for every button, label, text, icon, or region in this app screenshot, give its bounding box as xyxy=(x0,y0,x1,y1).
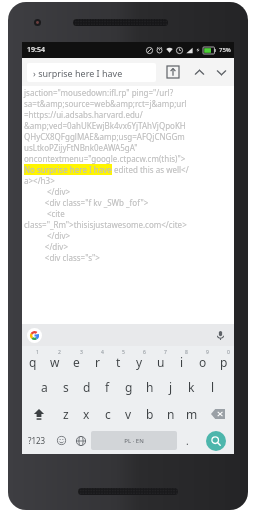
staticText: g xyxy=(125,379,133,395)
staticText: e xyxy=(73,354,80,370)
staticText: j xyxy=(169,379,173,395)
staticText: 8 xyxy=(185,349,188,356)
button[interactable]: v xyxy=(118,400,139,427)
button[interactable]: 3 xyxy=(66,346,87,373)
staticText: 4 xyxy=(101,349,104,356)
staticText: . xyxy=(186,434,189,448)
staticText: m xyxy=(186,406,198,422)
staticText: 9 xyxy=(206,349,209,356)
button[interactable]: Search xyxy=(206,431,226,451)
staticText: a></h3> xyxy=(24,175,55,186)
button[interactable]: Next match xyxy=(210,61,232,83)
button[interactable]: Voice input xyxy=(212,327,228,343)
button[interactable]: s xyxy=(55,373,76,400)
button[interactable]: 8 xyxy=(171,346,192,373)
button[interactable]: Space xyxy=(91,431,177,450)
staticText: 0 xyxy=(227,349,230,356)
button[interactable]: 2 xyxy=(44,346,66,373)
button[interactable]: . xyxy=(177,427,197,454)
button[interactable]: l xyxy=(202,373,223,400)
staticText: l xyxy=(211,379,215,395)
button[interactable]: g xyxy=(118,373,139,400)
staticText: h xyxy=(146,379,154,395)
button[interactable]: 7 xyxy=(150,346,171,373)
staticText: sa=t&amp;source=web&amp;rct=j&amp;url xyxy=(24,98,187,109)
staticText: <cite xyxy=(24,208,65,219)
staticText: w xyxy=(50,354,60,370)
staticText: 19:54 xyxy=(27,45,45,55)
staticText: jsaction="mousedown:ifl.rp" ping="/url? xyxy=(24,87,174,98)
staticText: 5 xyxy=(122,349,125,356)
staticText: p xyxy=(220,354,228,370)
staticText: <div class="f kv _SWb _fof"> xyxy=(24,197,149,208)
staticText: › surprise here I have xyxy=(33,67,123,79)
staticText: r xyxy=(95,354,100,370)
button[interactable]: Previous match xyxy=(188,61,210,83)
button[interactable]: Backspace xyxy=(202,400,234,427)
button[interactable]: Change language xyxy=(71,427,91,454)
staticText: n xyxy=(167,406,175,422)
staticText: x xyxy=(83,406,90,422)
button[interactable]: 1 xyxy=(22,346,44,373)
staticText: 6 xyxy=(143,349,146,356)
staticText: k xyxy=(188,379,195,395)
staticText: 1 xyxy=(36,349,39,356)
staticText: c xyxy=(105,406,111,422)
button[interactable]: x xyxy=(76,400,97,427)
button[interactable]: c xyxy=(97,400,118,427)
button[interactable]: Google search xyxy=(27,328,42,343)
staticText: t xyxy=(116,354,121,370)
staticText: 3 xyxy=(80,349,83,356)
button[interactable]: ?123 xyxy=(22,427,51,454)
staticText: =https://ui.adsabs.harvard.edu/ xyxy=(24,109,143,120)
staticText: s xyxy=(63,379,69,395)
staticText: v xyxy=(125,406,132,422)
button[interactable]: Open in browser xyxy=(162,61,184,83)
staticText: </div> xyxy=(24,230,71,241)
button[interactable]: z xyxy=(55,400,76,427)
button[interactable]: Emoji xyxy=(51,427,71,454)
button[interactable]: k xyxy=(181,373,202,400)
button[interactable]: m xyxy=(181,400,202,427)
button[interactable]: h xyxy=(139,373,160,400)
button[interactable]: f xyxy=(97,373,118,400)
staticText: oncontextmenu="google.ctpacw.cm(this)"> xyxy=(24,153,186,164)
staticText: d xyxy=(83,379,91,395)
button[interactable]: a xyxy=(34,373,55,400)
staticText: &amp;ved=0ahUKEwjBk4vx6YjTAhVjQpoKH xyxy=(24,120,186,131)
staticText: usLtkoPZijyFtNBnk0eAWA5gA" xyxy=(24,142,138,153)
button[interactable]: 6 xyxy=(129,346,150,373)
staticText: 7 xyxy=(164,349,167,356)
button[interactable]: Shift xyxy=(22,400,55,427)
staticText: a xyxy=(41,379,48,395)
staticText: QHyCX8QFgglMAE&amp;usg=AFQjCNGGm xyxy=(24,131,185,142)
staticText: edited this as well</ xyxy=(112,164,189,175)
staticText: </div> xyxy=(24,186,71,197)
staticText: q xyxy=(29,354,37,370)
button[interactable]: b xyxy=(139,400,160,427)
button[interactable]: 0 xyxy=(213,346,234,373)
staticText: f xyxy=(105,379,110,395)
staticText: 75% xyxy=(219,46,231,54)
button[interactable]: n xyxy=(160,400,181,427)
button[interactable]: 5 xyxy=(108,346,129,373)
staticText: z xyxy=(63,406,69,422)
button[interactable]: 9 xyxy=(192,346,213,373)
staticText: <div class="s"> xyxy=(24,252,100,263)
staticText: No surprise here I have xyxy=(24,164,112,175)
button[interactable]: › surprise here I have xyxy=(27,63,156,82)
staticText: ?123 xyxy=(28,435,46,446)
staticText: y xyxy=(136,354,143,370)
staticText: u xyxy=(157,354,165,370)
staticText: i xyxy=(180,354,184,370)
staticText: PL · EN xyxy=(124,437,144,445)
staticText: b xyxy=(146,406,154,422)
button[interactable]: j xyxy=(160,373,181,400)
button[interactable]: d xyxy=(76,373,97,400)
staticText: o xyxy=(199,354,207,370)
staticText: </div> xyxy=(24,241,68,252)
staticText: 2 xyxy=(58,349,61,356)
button[interactable]: 4 xyxy=(87,346,108,373)
staticText: class="_Rm">thisisjustawesome.com</cite> xyxy=(24,219,187,230)
